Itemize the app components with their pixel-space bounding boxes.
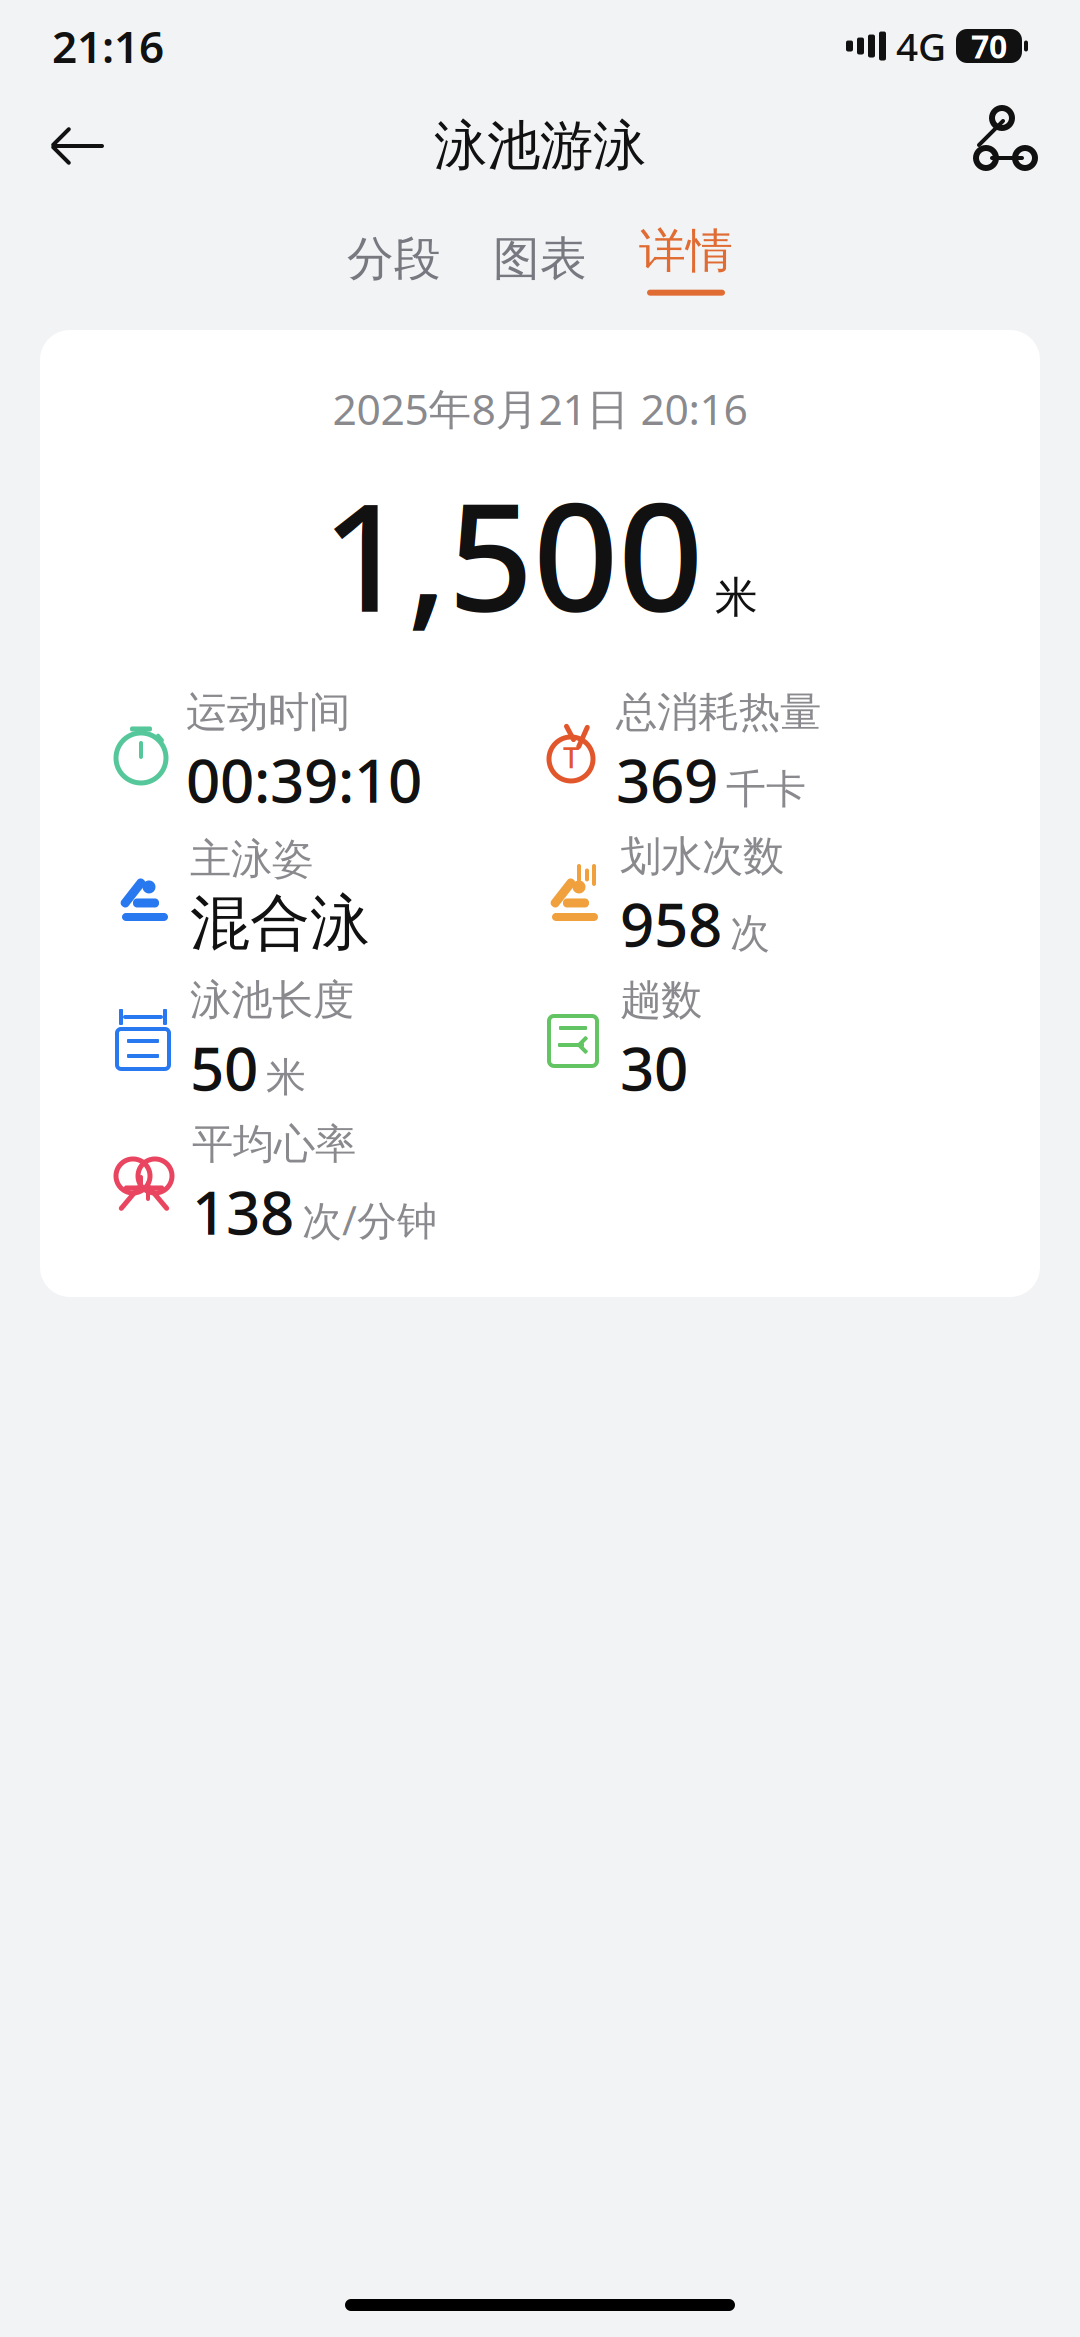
staticText: 运动时间 [186,687,350,737]
button[interactable]: 详情 [639,222,733,296]
button[interactable]: 分段 [347,222,441,296]
staticText: 21:16 [52,17,164,75]
staticText: T [563,737,579,776]
staticText: 958 [620,883,722,963]
staticText: 详情 [639,222,733,280]
staticText: 图表 [493,230,587,288]
staticText: 1,500 [322,455,703,653]
staticText: 分段 [347,230,441,288]
staticText: 米 [266,1053,306,1102]
staticText: 138 [192,1171,294,1251]
staticText: 30 [620,1027,688,1107]
staticText: 369 [616,739,718,819]
button[interactable]: 图表 [493,222,587,296]
staticText: 总消耗热量 [616,687,821,737]
staticText: 米 [715,571,758,624]
staticText: 50 [190,1027,258,1107]
staticText: 泳池游泳 [434,113,646,179]
staticText: 千卡 [726,765,806,814]
staticText: 2025年8月21日 20:16 [332,380,747,437]
staticText: 平均心率 [192,1119,356,1169]
button[interactable]: 返回 [48,116,108,176]
staticText: 次/分钟 [302,1193,437,1246]
staticText: 00:39:10 [186,739,422,819]
staticText: 混合泳 [190,886,370,960]
staticText: 4G [896,20,946,72]
staticText: 70 [971,25,1007,67]
button[interactable]: 分享 [962,111,1032,181]
staticText: 泳池长度 [190,975,354,1025]
staticText: 主泳姿 [190,834,313,884]
staticText: 划水次数 [620,831,784,881]
staticText: 次 [730,909,770,958]
staticText: 趟数 [620,975,702,1025]
